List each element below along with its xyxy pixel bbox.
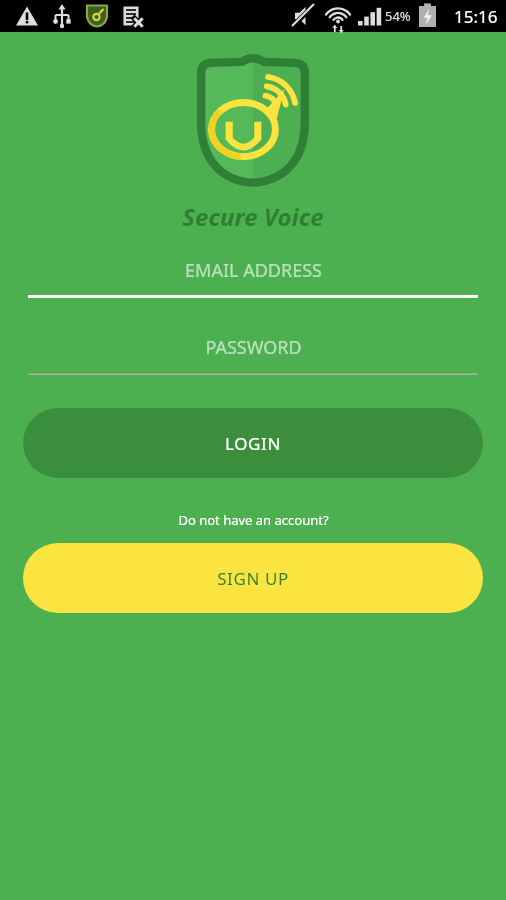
staticText: SIGN UP xyxy=(217,567,289,590)
staticText: Secure Voice xyxy=(182,200,324,233)
other: Secure Voice logo xyxy=(197,55,309,187)
button[interactable]: EMAIL ADDRESS xyxy=(28,253,478,298)
button[interactable]: SIGN UP xyxy=(23,543,483,613)
staticText: 54% xyxy=(385,7,411,25)
staticText: PASSWORD xyxy=(205,335,302,360)
staticText: 15:16 xyxy=(454,5,498,28)
staticText: Do not have an account? xyxy=(178,511,329,529)
staticText: LOGIN xyxy=(225,432,281,455)
button[interactable]: LOGIN xyxy=(23,408,483,478)
button[interactable]: PASSWORD xyxy=(28,330,478,375)
staticText: EMAIL ADDRESS xyxy=(185,258,322,283)
